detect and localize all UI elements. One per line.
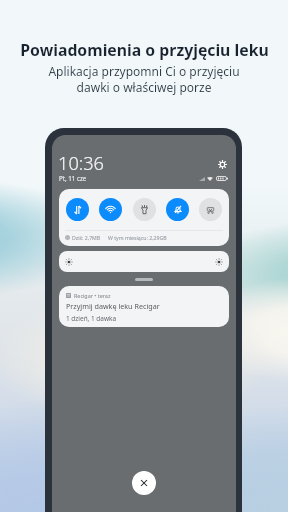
staticText: Dziś: 2,7MB — [72, 234, 101, 241]
button[interactable]: Wi-Fi — [99, 198, 122, 221]
button[interactable]: Flashlight — [133, 198, 156, 221]
staticText: 10:36 — [58, 151, 104, 176]
staticText: W tym miesiącu: 2,29GB — [108, 234, 167, 241]
button[interactable]: Close — [132, 471, 156, 495]
button[interactable]: Do not disturb — [166, 198, 189, 221]
staticText: Przyjmij dawkę leku Recigar — [66, 301, 160, 311]
button[interactable]: Mobile data — [66, 198, 89, 221]
staticText: Powiadomienia o przyjęciu leku — [20, 39, 269, 61]
button[interactable]: Recigar • teraz — [59, 286, 229, 327]
button[interactable]: Brightness — [59, 251, 229, 272]
staticText: Pt, 11 cze — [59, 174, 87, 182]
staticText: Recigar • teraz — [74, 292, 111, 299]
staticText: 1 dzień, 1 dawka — [66, 314, 117, 323]
other: Settings — [218, 160, 227, 169]
button[interactable]: Screenshot — [199, 198, 222, 221]
staticText: Aplikacja przypomni Ci o przyjęciu dawki… — [48, 63, 240, 96]
